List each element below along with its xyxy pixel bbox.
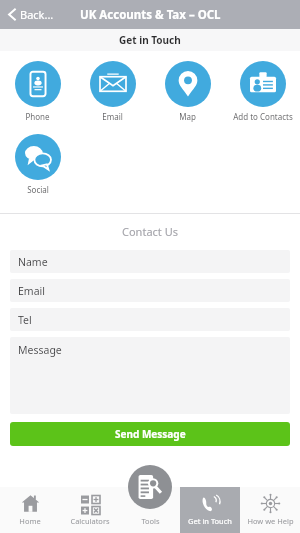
button[interactable]: Email <box>75 59 150 124</box>
staticText: Send Message <box>115 427 186 441</box>
button[interactable]: Phone <box>0 59 75 124</box>
button[interactable]: Email <box>10 279 290 302</box>
button[interactable]: Message <box>10 337 290 414</box>
button[interactable]: Name <box>10 250 290 273</box>
staticText: Home <box>19 516 41 526</box>
button[interactable]: Add to Contacts <box>225 59 300 124</box>
staticText: Social <box>27 184 49 195</box>
staticText: Tools <box>141 516 160 526</box>
staticText: Message <box>18 343 62 357</box>
staticText: Back... <box>20 7 54 22</box>
button[interactable]: Social <box>0 132 75 197</box>
button[interactable]: Map <box>150 59 225 124</box>
button[interactable]: How we Help <box>240 487 300 533</box>
button[interactable]: Back... <box>6 4 56 25</box>
staticText: Email <box>18 284 45 298</box>
staticText: Phone <box>25 111 50 122</box>
staticText: Email <box>102 111 123 122</box>
button[interactable]: Home <box>0 487 60 533</box>
staticText: Tel <box>18 313 32 327</box>
button[interactable]: Send Message <box>10 422 290 446</box>
staticText: Calculators <box>70 516 110 526</box>
staticText: Contact Us <box>122 224 178 239</box>
staticText: Name <box>18 255 48 269</box>
staticText: Get in Touch <box>188 516 232 526</box>
staticText: Add to Contacts <box>233 111 293 122</box>
staticText: UK Accounts & Tax – OCL <box>80 7 221 23</box>
staticText: Get in Touch <box>119 33 181 47</box>
staticText: How we Help <box>247 516 294 526</box>
button[interactable]: Tools <box>120 487 180 533</box>
button[interactable]: Tools <box>128 465 172 509</box>
button[interactable]: Tel <box>10 308 290 331</box>
staticText: Map <box>179 111 196 122</box>
button[interactable]: Get in Touch <box>180 487 240 533</box>
button[interactable]: Calculators <box>60 487 120 533</box>
